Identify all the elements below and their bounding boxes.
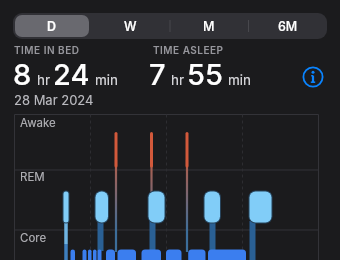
staticText: 8 <box>13 57 32 92</box>
staticText: min <box>95 72 119 88</box>
staticText: min <box>228 72 252 88</box>
staticText: M <box>203 19 215 34</box>
button[interactable]: M <box>169 13 248 39</box>
staticText: W <box>124 19 137 34</box>
staticText: 6M <box>278 19 298 34</box>
button[interactable] <box>15 15 89 37</box>
staticText: REM <box>20 170 45 184</box>
staticText: 24 <box>53 57 90 92</box>
button[interactable] <box>302 66 324 88</box>
staticText: hr <box>171 72 185 88</box>
staticText: 7 <box>149 57 166 92</box>
staticText: Awake <box>20 116 56 130</box>
staticText: Core <box>20 231 47 245</box>
button[interactable]: D <box>13 13 91 39</box>
staticText: D <box>47 19 57 34</box>
button[interactable]: W <box>91 13 169 39</box>
staticText: TIME IN BED <box>14 44 80 56</box>
staticText: hr <box>37 72 51 88</box>
button[interactable]: 6M <box>248 13 327 39</box>
staticText: TIME ASLEEP <box>153 44 224 56</box>
staticText: 55 <box>187 57 223 92</box>
staticText: 28 Mar 2024 <box>14 92 94 108</box>
